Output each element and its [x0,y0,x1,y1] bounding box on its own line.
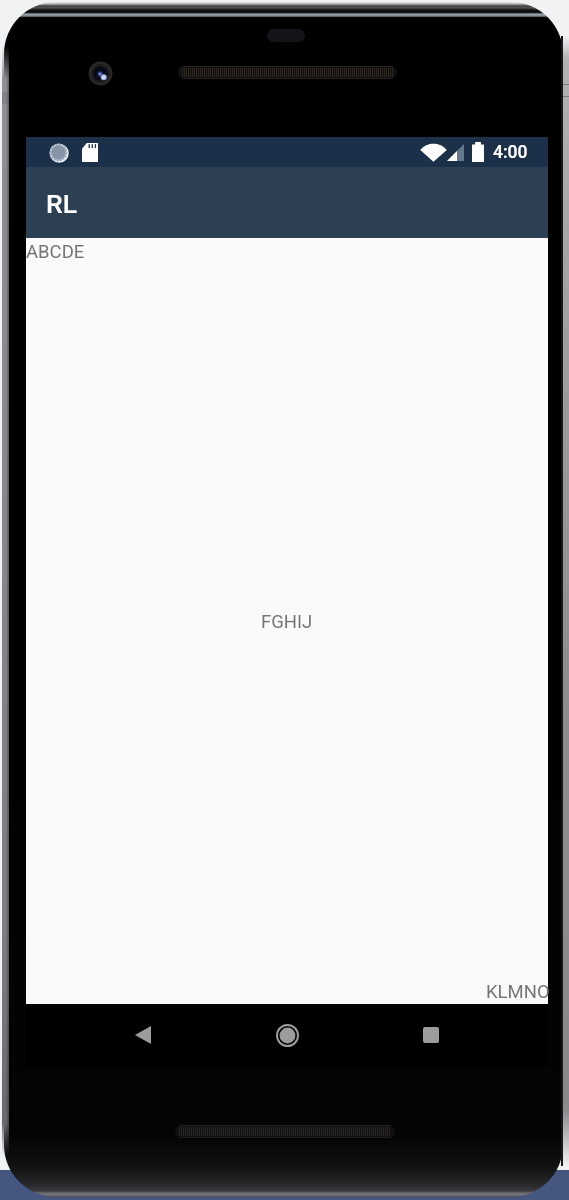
button[interactable]: Home [260,1004,314,1066]
button[interactable]: RL [26,167,548,238]
button[interactable]: Recent apps [404,1004,458,1066]
staticText: RL [46,188,77,219]
button[interactable]: Back [116,1004,170,1066]
staticText: ABCDE [26,241,85,263]
staticText: KLMNO [486,981,550,1003]
staticText: 4:00 [493,142,528,163]
staticText: FGHIJ [261,611,313,633]
